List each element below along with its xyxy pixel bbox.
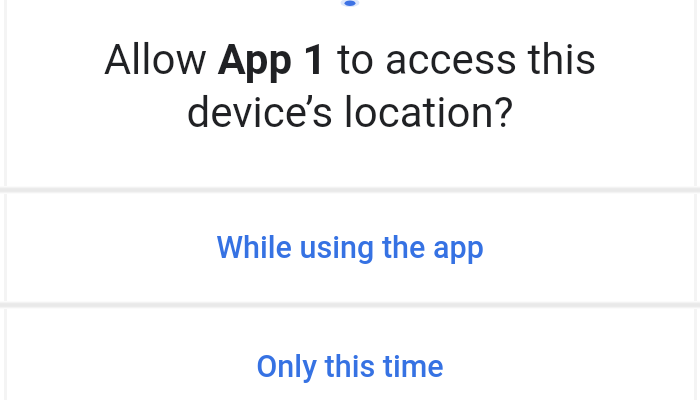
staticText: Allow App 1 to access this device’s loca…	[0, 35, 700, 137]
button[interactable]: Only this time	[0, 307, 700, 400]
staticText: Only this time	[256, 349, 444, 385]
button[interactable]: While using the app	[0, 192, 700, 303]
staticText: While using the app	[216, 230, 484, 266]
